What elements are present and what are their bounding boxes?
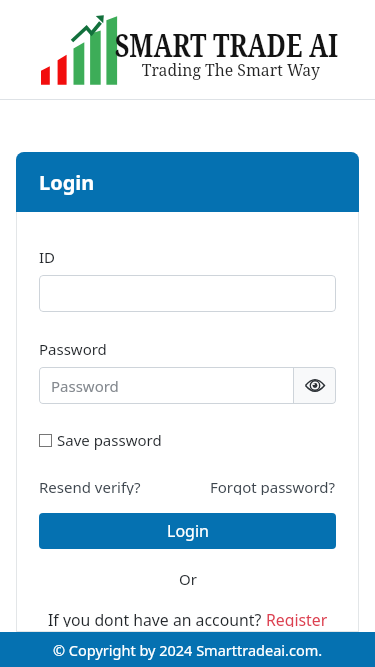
staticText: Resend verify? — [39, 477, 141, 495]
staticText: SMART TRADE AI — [115, 23, 338, 57]
staticText: Forgot password? — [210, 477, 336, 495]
staticText: Password — [39, 339, 107, 357]
staticText: Or — [179, 569, 197, 587]
button[interactable] — [39, 275, 336, 312]
button[interactable]: Password — [39, 367, 294, 404]
staticText: Save password — [57, 430, 162, 450]
staticText: ID — [39, 247, 56, 265]
staticText: © Copyright by 2024 Smarttradeai.com. — [53, 640, 323, 660]
staticText: Register — [266, 609, 328, 627]
staticText: If you dont have an account? — [48, 609, 266, 627]
button[interactable]: Resend verify? — [39, 477, 169, 495]
button[interactable]: Register — [266, 609, 328, 627]
button[interactable]: Save password — [39, 430, 162, 450]
button[interactable]: Login — [39, 513, 336, 549]
staticText: Password — [51, 376, 119, 396]
staticText: Login — [39, 169, 95, 196]
staticText: Trading The Smart Way — [142, 58, 320, 81]
staticText: Login — [167, 520, 209, 542]
button[interactable] — [293, 367, 336, 404]
button[interactable]: Forgot password? — [206, 477, 336, 495]
